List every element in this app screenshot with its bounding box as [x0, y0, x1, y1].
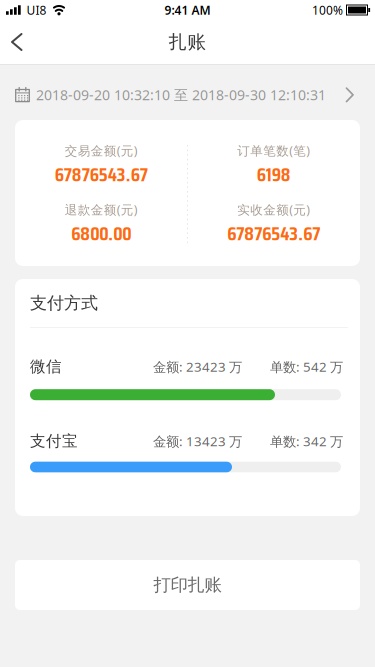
- staticText: 扎账: [168, 30, 206, 54]
- button[interactable]: 打印扎账: [15, 560, 360, 610]
- staticText: 67876543.67: [55, 159, 148, 190]
- staticText: 67876543.67: [227, 218, 320, 249]
- staticText: 2018-09-20 10:32:10 至 2018-09-30 12:10:3…: [36, 85, 326, 104]
- staticText: 打印扎账: [153, 574, 221, 596]
- staticText: 订单笔数(笔): [237, 142, 310, 159]
- staticText: 9:41 AM: [164, 2, 210, 18]
- staticText: 金额: 13423 万: [153, 432, 242, 450]
- staticText: 6198: [257, 159, 291, 190]
- staticText: 金额: 23423 万: [153, 358, 242, 376]
- staticText: 退款金额(元): [65, 201, 138, 218]
- staticText: 单数: 342 万: [270, 432, 343, 450]
- staticText: 交易金额(元): [65, 142, 138, 159]
- staticText: 单数: 542 万: [270, 358, 343, 376]
- button[interactable]: 2018-09-20 10:32:10 至 2018-09-30 12:10:3…: [0, 65, 375, 120]
- staticText: 100%: [312, 2, 343, 18]
- button[interactable]: Back: [0, 21, 35, 63]
- staticText: UI8: [26, 2, 46, 18]
- staticText: 支付方式: [30, 292, 98, 314]
- staticText: 实收金额(元): [237, 201, 310, 218]
- staticText: 微信: [30, 357, 62, 376]
- staticText: 6800.00: [71, 218, 131, 249]
- staticText: 支付宝: [30, 431, 78, 451]
